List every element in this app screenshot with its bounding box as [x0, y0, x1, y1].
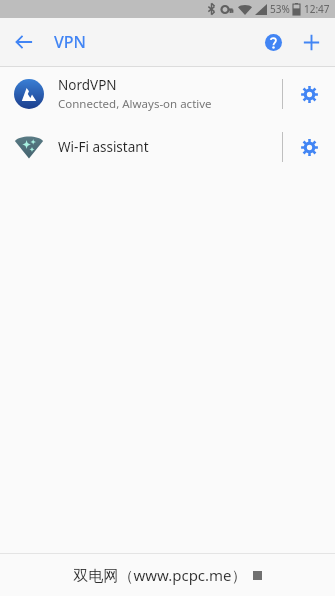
staticText: 12:47 [304, 2, 330, 16]
staticText: Connected, Always-on active [58, 96, 212, 112]
button[interactable]: Add VPN profile [293, 24, 329, 60]
button[interactable]: Back [6, 24, 42, 60]
staticText: 双电网（www.pcpc.me） [73, 565, 247, 585]
button[interactable]: Settings [283, 121, 335, 173]
staticText: VPN [54, 31, 87, 53]
button[interactable]: Help [255, 24, 291, 60]
button[interactable]: NordVPN [0, 67, 335, 120]
staticText: Wi-Fi assistant [58, 138, 149, 156]
button[interactable]: Settings [283, 68, 335, 120]
button[interactable]: Wi-Fi assistant [0, 120, 335, 173]
staticText: 53% [270, 2, 290, 16]
staticText: NordVPN [58, 76, 117, 94]
